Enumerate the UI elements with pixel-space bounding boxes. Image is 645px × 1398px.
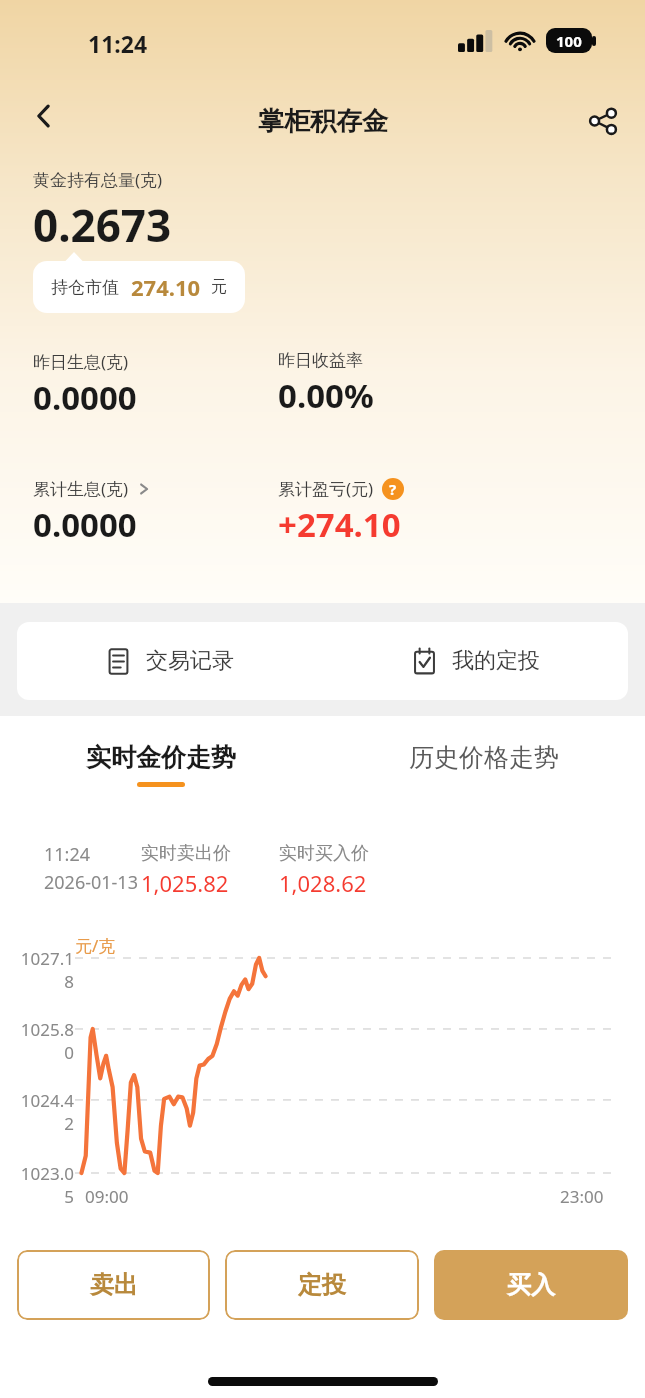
staticText: 历史价格走势 — [409, 742, 559, 773]
staticText: 1,028.62 — [279, 868, 367, 898]
staticText: 交易记录 — [146, 647, 234, 675]
staticText: 实时买入价 — [279, 842, 369, 865]
staticText: 11:24 — [44, 842, 91, 867]
staticText: 昨日收益率 — [278, 350, 363, 371]
staticText: 累计盈亏(元) — [278, 477, 374, 500]
staticText: 11:24 — [88, 28, 148, 59]
staticText: 0.0000 — [33, 375, 137, 420]
staticText: 实时卖出价 — [141, 842, 231, 865]
staticText: 元 — [211, 277, 227, 297]
staticText: 定投 — [298, 1270, 346, 1300]
staticText: 1023.05 — [12, 1162, 74, 1208]
staticText: 1025.80 — [12, 1018, 74, 1064]
staticText: 1,025.82 — [141, 868, 229, 898]
button[interactable]: 返回 — [16, 88, 72, 144]
staticText: 掌柜积存金 — [258, 105, 388, 138]
staticText: 23:00 — [560, 1185, 604, 1208]
staticText: 元/克 — [75, 934, 116, 957]
staticText: 持仓市值 — [51, 277, 119, 298]
staticText: 09:00 — [85, 1185, 129, 1208]
button[interactable]: 历史价格走势 — [322, 742, 645, 773]
button[interactable]: 实时金价走势 — [0, 742, 322, 787]
staticText: ? — [389, 479, 397, 499]
staticText: 买入 — [507, 1270, 555, 1300]
staticText: 2026-01-13 — [44, 870, 138, 895]
button[interactable]: 我的定投 — [322, 622, 628, 700]
staticText: 我的定投 — [452, 647, 540, 675]
staticText: 0.2673 — [33, 195, 172, 255]
staticText: 0.00% — [278, 373, 374, 418]
button[interactable]: 买入 — [434, 1250, 628, 1320]
staticText: 1024.42 — [12, 1089, 74, 1135]
staticText: 0.0000 — [33, 502, 137, 547]
staticText: 274.10 — [131, 272, 201, 302]
button[interactable]: 定投 — [225, 1250, 419, 1320]
staticText: 卖出 — [90, 1270, 138, 1300]
button[interactable]: 说明 — [382, 478, 404, 500]
staticText: 黄金持有总量(克) — [33, 168, 163, 191]
button[interactable]: 卖出 — [17, 1250, 210, 1320]
staticText: 1027.18 — [12, 947, 74, 993]
button[interactable]: 分享 — [577, 95, 629, 147]
button[interactable]: 持仓市值 — [33, 261, 245, 313]
button[interactable]: 查看累计生息 — [137, 482, 151, 496]
staticText: 实时金价走势 — [86, 742, 236, 773]
button[interactable]: 交易记录 — [17, 622, 322, 700]
staticText: +274.10 — [278, 502, 401, 547]
staticText: 累计生息(克) — [33, 477, 129, 500]
staticText: 100 — [556, 31, 582, 51]
staticText: 昨日生息(克) — [33, 350, 129, 373]
